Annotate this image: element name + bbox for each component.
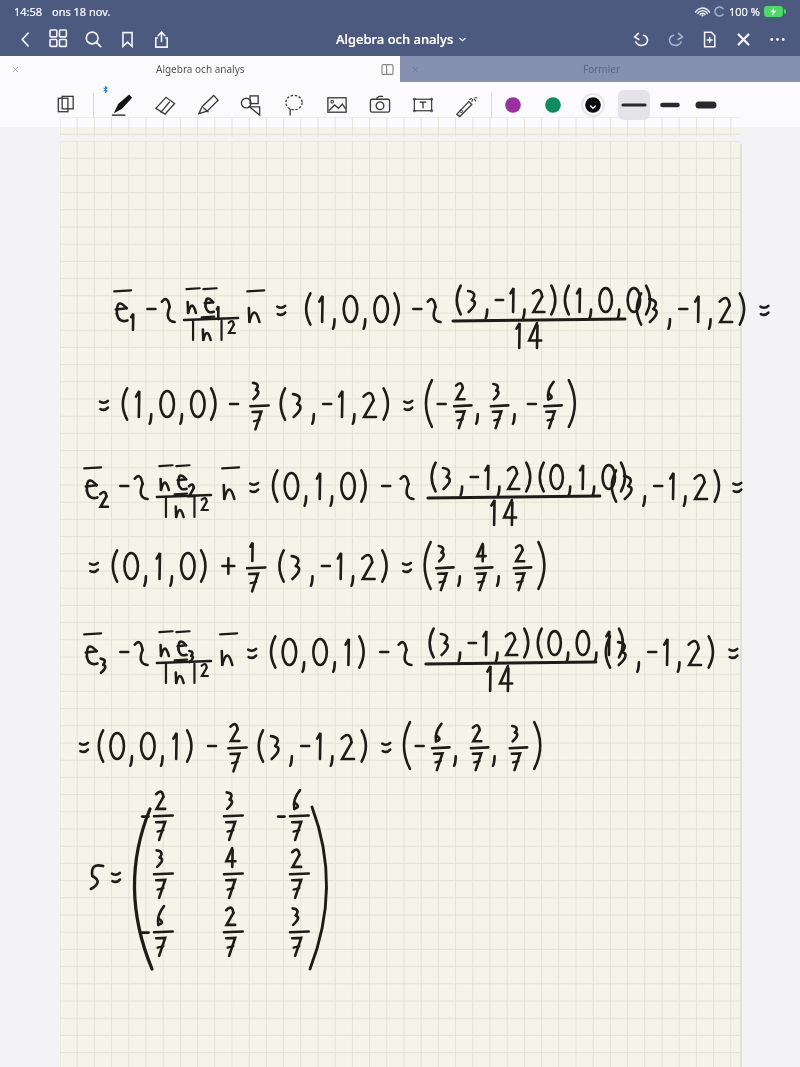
button[interactable]: More xyxy=(760,22,794,56)
button[interactable]: Layers xyxy=(44,85,87,125)
button[interactable]: Split view xyxy=(377,59,397,79)
button[interactable]: Close Formler tab xyxy=(400,56,800,82)
button[interactable]: Purple colour xyxy=(500,92,526,118)
button[interactable]: Highlighter xyxy=(186,85,229,125)
button[interactable]: Black colour xyxy=(580,92,606,118)
staticText: ons 18 nov. xyxy=(52,4,111,19)
button[interactable]: Algebra och analys xyxy=(330,27,472,51)
staticText: Formler xyxy=(583,62,621,76)
button[interactable]: Lasso xyxy=(272,85,315,125)
button[interactable]: Pen xyxy=(100,85,143,125)
button[interactable]: Close xyxy=(726,22,760,56)
button[interactable]: Shapes xyxy=(229,85,272,125)
staticText: 100 % xyxy=(729,4,760,19)
button[interactable]: Add page xyxy=(692,22,726,56)
button[interactable]: Thick stroke xyxy=(690,90,722,120)
button[interactable]: Undo xyxy=(624,22,658,56)
button[interactable]: Close tab xyxy=(0,56,400,82)
staticText: 14:58 xyxy=(14,4,43,19)
button[interactable]: Share xyxy=(144,22,178,56)
button[interactable]: Back xyxy=(8,22,42,56)
button[interactable]: Close tab xyxy=(6,60,24,78)
button[interactable]: Search xyxy=(76,22,110,56)
button[interactable]: Text box xyxy=(401,85,444,125)
staticText: Algebra och analys xyxy=(156,62,245,76)
button[interactable]: Magic xyxy=(444,85,487,125)
button[interactable]: Image xyxy=(315,85,358,125)
button[interactable]: Redo xyxy=(658,22,692,56)
button[interactable]: Camera xyxy=(358,85,401,125)
button[interactable]: Close Formler tab xyxy=(406,60,424,78)
staticText: Algebra och analys xyxy=(336,30,454,48)
button[interactable]: Bookmark xyxy=(110,22,144,56)
button[interactable]: Green colour xyxy=(540,92,566,118)
button[interactable]: Thin stroke xyxy=(618,90,650,120)
button[interactable]: Pages xyxy=(42,22,76,56)
button[interactable]: Eraser xyxy=(143,85,186,125)
button[interactable]: Medium stroke xyxy=(654,90,686,120)
